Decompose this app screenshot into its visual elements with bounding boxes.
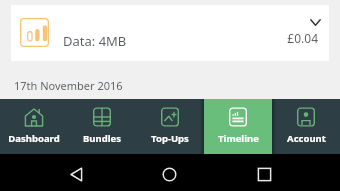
staticText: Top-Ups (151, 132, 189, 145)
button[interactable]: Dashboard (0, 99, 68, 154)
staticText: Dashboard (8, 132, 60, 145)
button[interactable]: Bundles (68, 99, 136, 154)
staticText: £0.04 (287, 30, 318, 46)
staticText: Data: 4MB (63, 32, 127, 50)
staticText: 17th November 2016 (14, 78, 123, 93)
button[interactable]: Home (145, 158, 193, 191)
button[interactable]: Account (272, 99, 340, 154)
button[interactable]: Data: 4MB (11, 5, 329, 61)
other: Expand (310, 19, 321, 26)
button[interactable]: Recents (240, 158, 288, 191)
button[interactable]: Top-Ups (136, 99, 204, 154)
button[interactable]: Back (52, 158, 100, 191)
button[interactable]: Timeline (204, 99, 272, 154)
staticText: Account (287, 132, 326, 145)
staticText: Bundles (83, 132, 121, 145)
staticText: Timeline (218, 132, 259, 145)
